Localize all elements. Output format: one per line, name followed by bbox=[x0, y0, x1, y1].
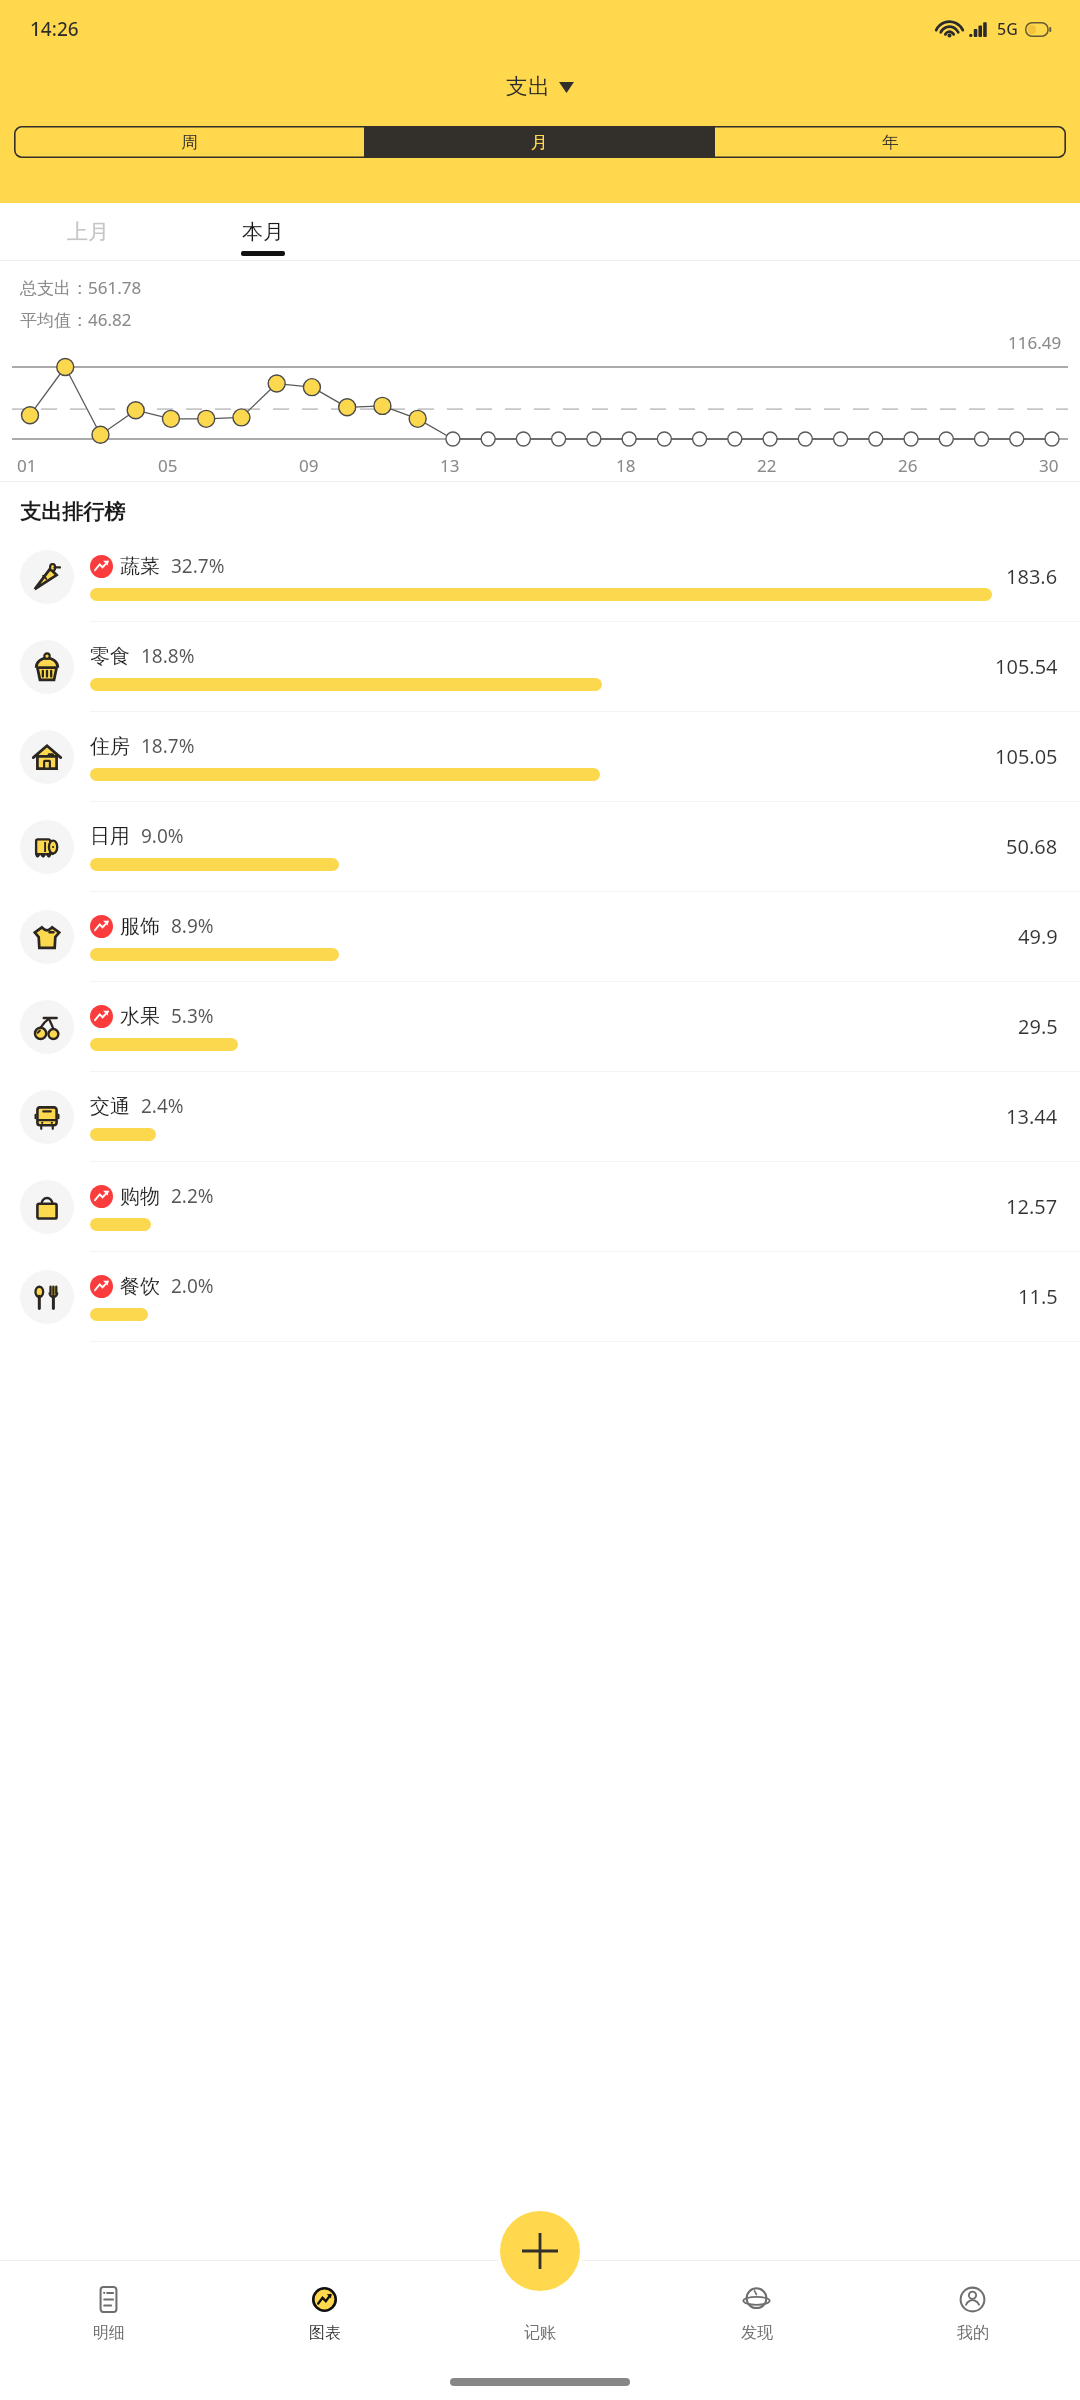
button[interactable]: 记账 bbox=[432, 2261, 648, 2364]
staticText: 交通 bbox=[90, 1094, 130, 1119]
staticText: 明细 bbox=[93, 2323, 125, 2343]
staticText: 日用 bbox=[90, 824, 130, 849]
staticText: 购物 bbox=[120, 1184, 160, 1209]
staticText: 2.2% bbox=[171, 1183, 214, 1209]
staticText: 13.44 bbox=[1006, 1103, 1058, 1130]
button[interactable]: 零食 bbox=[0, 622, 1080, 712]
staticText: 5G bbox=[997, 18, 1018, 40]
staticText: 9.0% bbox=[141, 823, 184, 849]
staticText: 本月 bbox=[242, 219, 284, 245]
button[interactable]: 蔬菜 bbox=[0, 532, 1080, 622]
staticText: 32.7% bbox=[171, 553, 225, 579]
staticText: 11.5 bbox=[1018, 1283, 1058, 1310]
staticText: 图表 bbox=[309, 2323, 341, 2343]
button[interactable]: 记账 bbox=[500, 2211, 580, 2291]
button[interactable]: 周 bbox=[14, 126, 364, 158]
button[interactable]: 交通 bbox=[0, 1072, 1080, 1162]
staticText: 住房 bbox=[90, 734, 130, 759]
staticText: 29.5 bbox=[1018, 1013, 1058, 1040]
staticText: 30 bbox=[1039, 454, 1059, 477]
staticText: 12.57 bbox=[1006, 1193, 1058, 1220]
staticText: 支出 bbox=[506, 73, 550, 101]
staticText: 105.05 bbox=[995, 743, 1058, 770]
button[interactable]: 发现 bbox=[648, 2261, 864, 2364]
button[interactable]: 上月 bbox=[0, 203, 175, 261]
button[interactable]: 年 bbox=[715, 126, 1066, 158]
button[interactable]: 日用 bbox=[0, 802, 1080, 892]
staticText: 50.68 bbox=[1006, 833, 1058, 860]
button[interactable]: 图表 bbox=[216, 2261, 432, 2364]
staticText: 22 bbox=[757, 454, 777, 477]
staticText: 18 bbox=[616, 454, 636, 477]
staticText: 餐饮 bbox=[120, 1274, 160, 1299]
staticText: 2.0% bbox=[171, 1273, 214, 1299]
staticText: 蔬菜 bbox=[120, 554, 160, 579]
staticText: 26 bbox=[898, 454, 918, 477]
staticText: 14:26 bbox=[30, 16, 79, 42]
button[interactable]: 我的 bbox=[864, 2261, 1080, 2364]
staticText: 2.4% bbox=[141, 1093, 184, 1119]
button[interactable]: 餐饮 bbox=[0, 1252, 1080, 1342]
staticText: 8.9% bbox=[171, 913, 214, 939]
staticText: 我的 bbox=[957, 2323, 989, 2343]
staticText: 记账 bbox=[524, 2323, 556, 2343]
staticText: 183.6 bbox=[1006, 563, 1058, 590]
staticText: 发现 bbox=[741, 2323, 773, 2343]
staticText: 月 bbox=[531, 132, 548, 153]
button[interactable]: 本月 bbox=[175, 203, 350, 261]
staticText: 5.3% bbox=[171, 1003, 214, 1029]
staticText: 水果 bbox=[120, 1004, 160, 1029]
staticText: 零食 bbox=[90, 644, 130, 669]
staticText: 116.49 bbox=[1008, 331, 1062, 354]
button[interactable]: 明细 bbox=[0, 2261, 216, 2364]
staticText: 总支出：561.78 bbox=[20, 276, 142, 299]
staticText: 周 bbox=[181, 132, 198, 153]
staticText: 年 bbox=[882, 132, 899, 153]
staticText: 服饰 bbox=[120, 914, 160, 939]
button[interactable]: 月 bbox=[364, 126, 715, 158]
staticText: 49.9 bbox=[1018, 923, 1058, 950]
staticText: 18.8% bbox=[141, 643, 195, 669]
staticText: 01 bbox=[17, 454, 37, 477]
staticText: 105.54 bbox=[995, 653, 1058, 680]
staticText: 上月 bbox=[67, 219, 109, 245]
staticText: 支出排行榜 bbox=[20, 499, 125, 525]
staticText: 平均值：46.82 bbox=[20, 308, 132, 331]
button[interactable]: 服饰 bbox=[0, 892, 1080, 982]
button[interactable]: 购物 bbox=[0, 1162, 1080, 1252]
staticText: 05 bbox=[158, 454, 178, 477]
staticText: 09 bbox=[299, 454, 319, 477]
button[interactable]: 水果 bbox=[0, 982, 1080, 1072]
button[interactable]: 住房 bbox=[0, 712, 1080, 802]
button[interactable]: 支出 bbox=[492, 67, 588, 107]
staticText: 13 bbox=[440, 454, 460, 477]
staticText: 18.7% bbox=[141, 733, 195, 759]
